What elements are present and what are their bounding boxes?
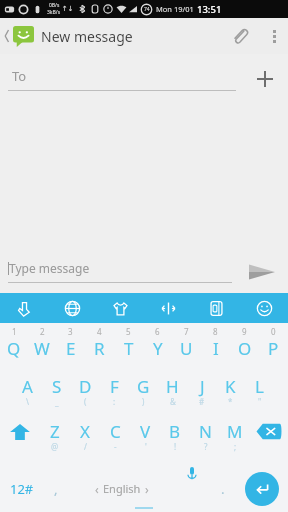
button[interactable]: J [187, 375, 216, 420]
staticText: 13:51 [197, 3, 222, 16]
button[interactable]: B [160, 420, 190, 465]
staticText: 3 [68, 326, 73, 337]
staticText: E [66, 337, 76, 360]
staticText: F [110, 375, 119, 398]
staticText: ? [204, 441, 208, 452]
button[interactable]: Clipboard [192, 293, 240, 323]
button[interactable]: S [42, 375, 71, 420]
staticText: Y [153, 337, 163, 360]
button[interactable]: Period [210, 465, 236, 512]
staticText: - [114, 441, 117, 452]
button[interactable]: ‹ [69, 465, 174, 512]
button[interactable]: Emoji [240, 293, 288, 323]
staticText: N [199, 420, 212, 443]
staticText: # [199, 396, 205, 407]
button[interactable]: D [71, 375, 100, 420]
staticText: 3kB/s [47, 9, 61, 16]
button[interactable]: V [130, 420, 160, 465]
staticText: / [84, 441, 87, 452]
staticText: English [103, 481, 141, 496]
staticText: ) [142, 396, 145, 407]
button[interactable]: Q [0, 337, 28, 375]
button[interactable]: F [100, 375, 129, 420]
staticText: New message [41, 27, 133, 46]
button[interactable]: H [158, 375, 187, 420]
button[interactable]: Language [48, 293, 96, 323]
staticText: 4 [97, 326, 102, 337]
staticText: S [52, 375, 62, 398]
button[interactable]: Attach [220, 18, 260, 54]
staticText: G [137, 375, 150, 398]
staticText: 6 [155, 326, 160, 337]
staticText: I [213, 337, 219, 360]
staticText: 2 [40, 326, 45, 337]
staticText: 74 [144, 6, 150, 13]
button[interactable]: A [13, 375, 42, 420]
button[interactable]: M [220, 420, 250, 465]
button[interactable]: Delete [250, 420, 288, 465]
staticText: D [79, 375, 92, 398]
button[interactable]: Enter [236, 465, 288, 512]
staticText: * [228, 396, 233, 407]
button[interactable]: Type message [8, 260, 232, 283]
staticText: 12# [10, 480, 34, 498]
button[interactable]: T [114, 337, 143, 375]
button[interactable]: Themes [96, 293, 144, 323]
button[interactable]: O [230, 337, 259, 375]
button[interactable]: L [245, 375, 274, 420]
staticText: " [258, 396, 262, 407]
button[interactable]: P [259, 337, 288, 375]
staticText: P [268, 337, 279, 360]
button[interactable]: Voice input [174, 465, 210, 512]
staticText: O [238, 337, 252, 360]
staticText: A [22, 375, 33, 398]
button[interactable]: 12# [0, 465, 43, 512]
staticText: Type message [9, 260, 90, 276]
staticText: 5 [126, 326, 131, 337]
staticText: ( [84, 396, 87, 407]
staticText: C [110, 420, 121, 443]
staticText: V [140, 420, 151, 443]
staticText: ; [234, 441, 237, 452]
button[interactable]: Comma [43, 465, 69, 512]
staticText: U [180, 337, 193, 360]
button[interactable]: K [216, 375, 245, 420]
button[interactable]: More options [260, 18, 288, 54]
staticText: K [225, 375, 236, 398]
button[interactable]: W [28, 337, 56, 375]
staticText: _ [55, 396, 59, 407]
staticText: X [80, 420, 90, 443]
button[interactable]: Add recipient [248, 62, 282, 96]
staticText: B [169, 420, 181, 443]
button[interactable]: Y [143, 337, 172, 375]
button[interactable]: Send [240, 252, 284, 292]
button[interactable]: U [172, 337, 201, 375]
button[interactable]: C [100, 420, 130, 465]
staticText: . [221, 480, 225, 498]
button[interactable]: Z [39, 420, 70, 465]
button[interactable]: Handwriting [0, 293, 48, 323]
button[interactable]: Resize [144, 293, 192, 323]
staticText: T [124, 337, 134, 360]
staticText: 0B/s [49, 2, 60, 9]
staticText: \ [26, 396, 29, 407]
button[interactable]: To [8, 67, 236, 91]
button[interactable]: X [70, 420, 100, 465]
staticText: 9 [242, 326, 247, 337]
staticText: , [54, 480, 58, 498]
staticText: Z [50, 420, 60, 443]
button[interactable]: G [129, 375, 158, 420]
staticText: & [170, 396, 176, 407]
button[interactable]: I [201, 337, 230, 375]
staticText: 0 [271, 326, 276, 337]
staticText: 8 [213, 326, 218, 337]
button[interactable]: Shift [0, 420, 39, 465]
staticText: W [34, 337, 50, 360]
button[interactable]: R [85, 337, 114, 375]
staticText: ↑↓ [62, 5, 74, 13]
button[interactable]: N [190, 420, 220, 465]
staticText: 1 [12, 326, 17, 337]
button[interactable]: E [56, 337, 85, 375]
staticText: To [12, 67, 27, 85]
button[interactable]: New message [0, 18, 137, 54]
